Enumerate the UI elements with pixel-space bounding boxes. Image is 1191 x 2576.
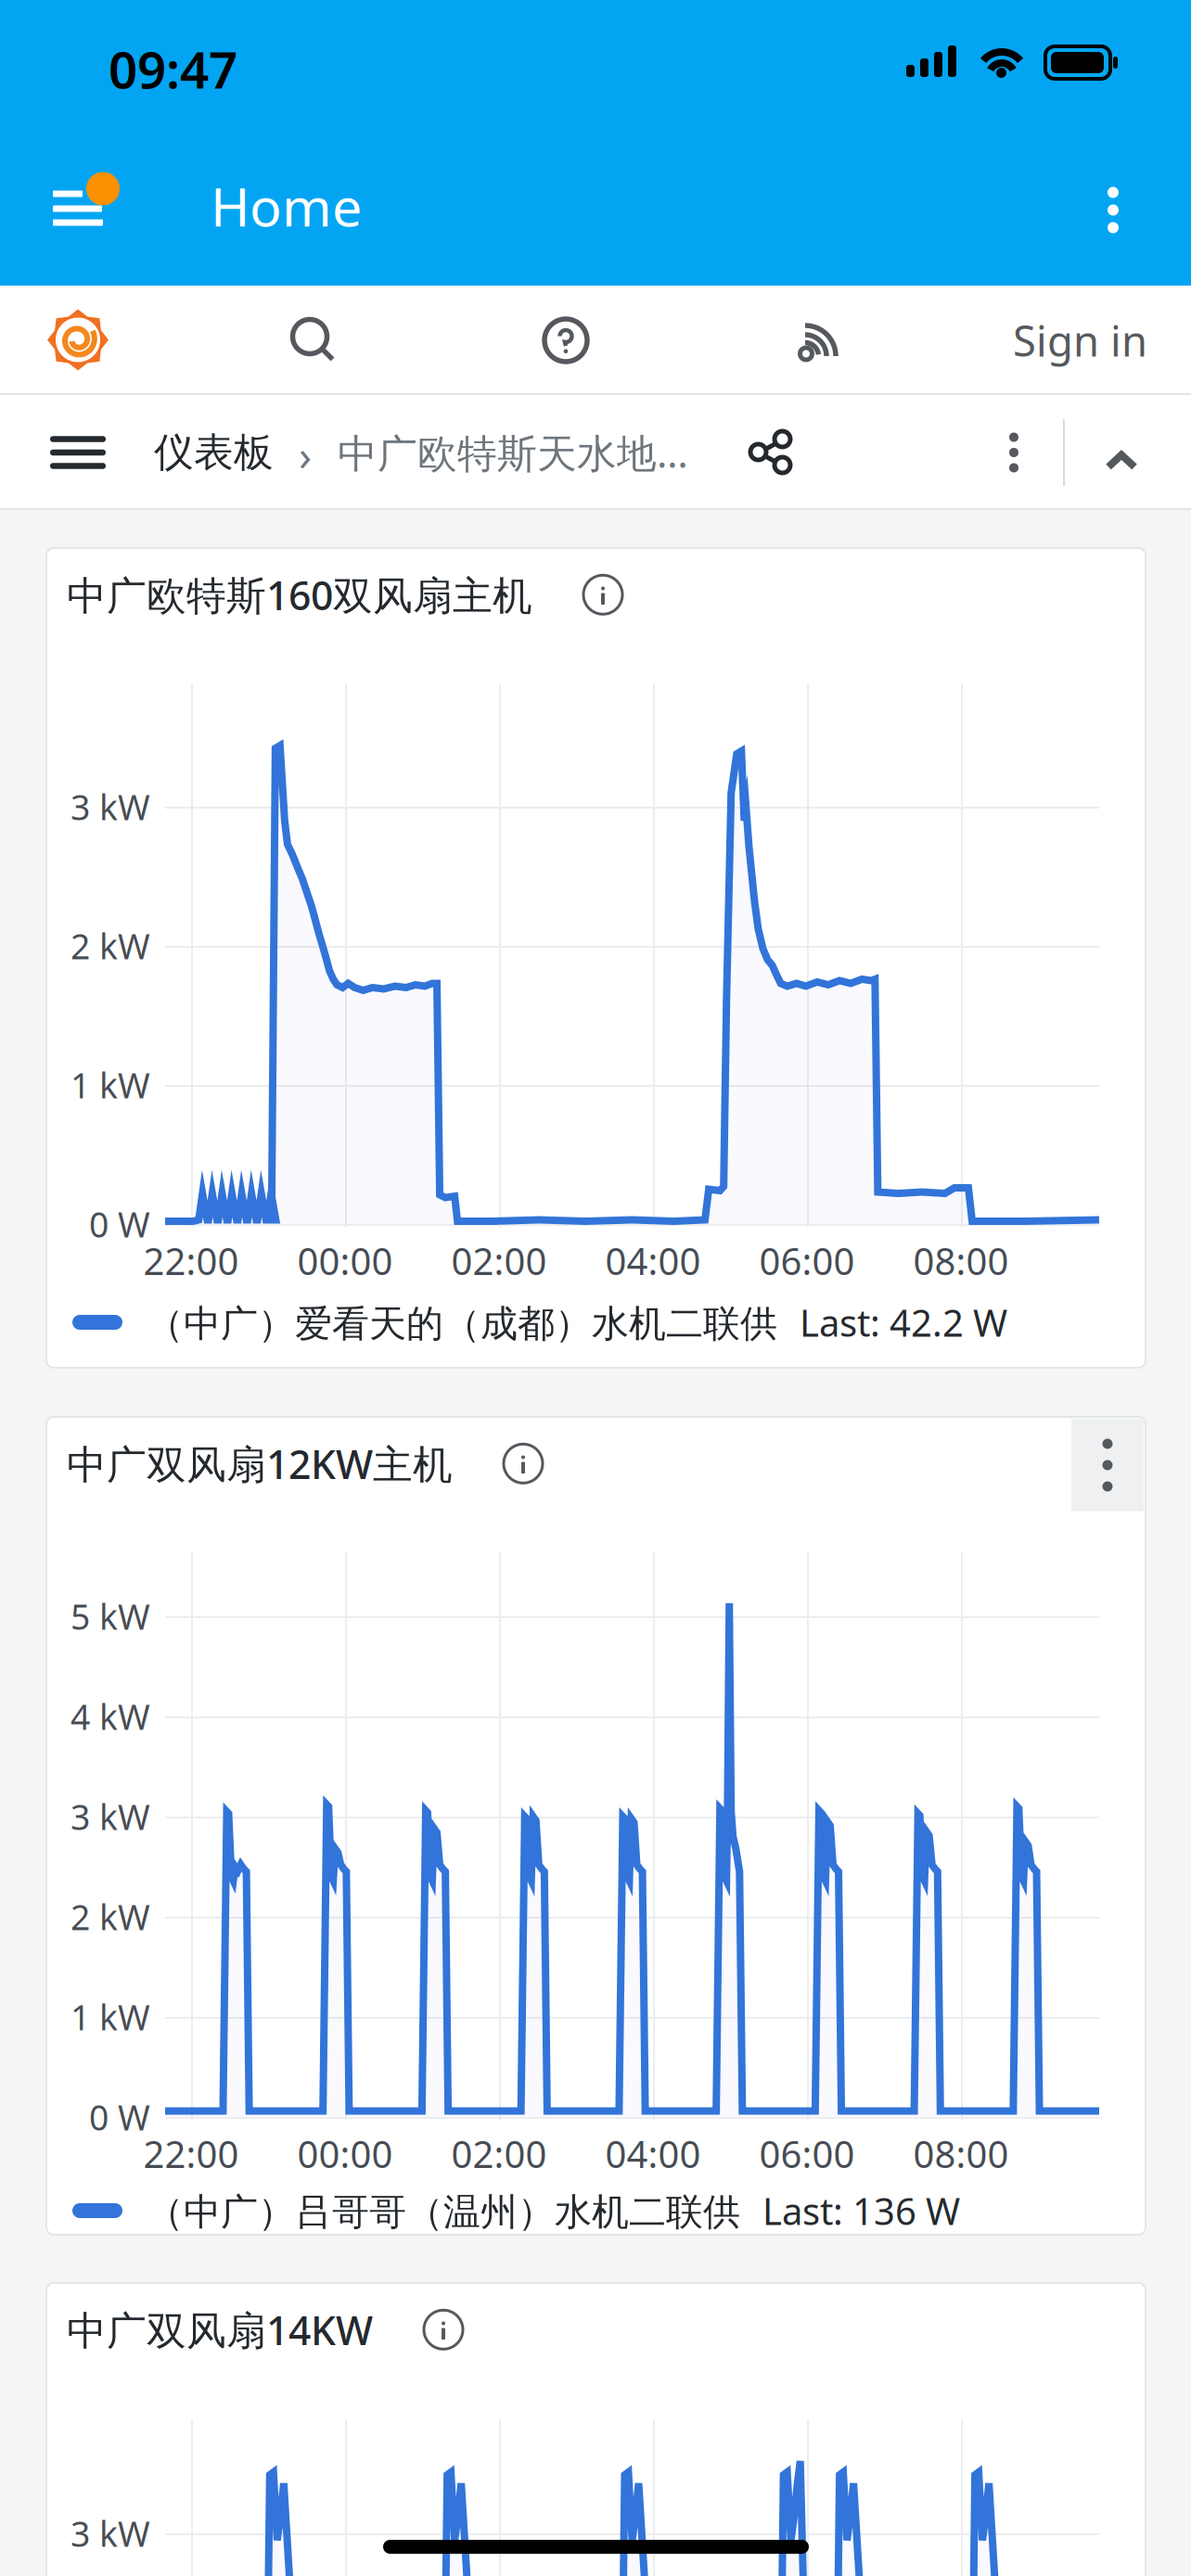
staticText: 0 W	[89, 2094, 150, 2140]
staticText: 22:00	[143, 2129, 239, 2178]
button[interactable]: Panel menu	[1071, 1419, 1144, 1511]
staticText: 0 W	[89, 1201, 150, 1247]
button[interactable]: Collapse	[1080, 403, 1163, 518]
staticText: 08:00	[913, 2129, 1009, 2178]
staticText: 00:00	[297, 2129, 393, 2178]
staticText: 1 kW	[70, 1062, 150, 1108]
staticText: 02:00	[451, 1236, 547, 1285]
staticText: Sign in	[1013, 312, 1147, 368]
button[interactable]: Menu	[31, 123, 142, 274]
staticText: 09:47	[109, 35, 237, 103]
staticText: 5 kW	[70, 1593, 150, 1639]
staticText: 1 kW	[70, 1994, 150, 2040]
staticText: 06:00	[759, 1236, 855, 1285]
button[interactable]: Share	[724, 395, 816, 510]
staticText: 中广欧特斯天水地…	[338, 426, 688, 479]
button[interactable]: Help	[519, 286, 612, 395]
staticText: 2 kW	[70, 923, 150, 969]
staticText: （中广）吕哥哥（温州）水机二联供 Last: 136 W	[147, 2186, 960, 2235]
button[interactable]: Search	[267, 286, 360, 395]
button[interactable]: Toggle menu	[32, 395, 124, 510]
button[interactable]: News	[775, 286, 868, 395]
staticText: 4 kW	[70, 1693, 150, 1739]
button[interactable]: 仪表板	[154, 395, 284, 510]
staticText: 04:00	[605, 1236, 701, 1285]
staticText: 2 kW	[70, 1894, 150, 1940]
button[interactable]: More options	[1062, 134, 1164, 286]
staticText: 02:00	[451, 2129, 547, 2178]
staticText: 06:00	[759, 2129, 855, 2178]
staticText: 3 kW	[70, 2510, 150, 2556]
staticText: 3 kW	[70, 784, 150, 830]
staticText: 仪表板	[154, 428, 274, 477]
staticText: 04:00	[605, 2129, 701, 2178]
button[interactable]: Sign in	[943, 286, 1147, 395]
staticText: Home	[211, 171, 362, 241]
staticText: 22:00	[143, 1236, 239, 1285]
staticText: 中广欧特斯160双风扇主机	[67, 568, 532, 621]
button[interactable]: Dashboard settings	[972, 395, 1056, 510]
staticText: 中广双风扇14KW	[67, 2303, 373, 2356]
staticText: 08:00	[913, 1236, 1009, 1285]
button[interactable]: Grafana home	[32, 286, 124, 395]
staticText: 3 kW	[70, 1794, 150, 1840]
staticText: ›	[299, 427, 312, 482]
staticText: 00:00	[297, 1236, 393, 1285]
staticText: （中广）爱看天的（成都）水机二联供 Last: 42.2 W	[147, 1298, 1007, 1347]
staticText: 中广双风扇12KW主机	[67, 1437, 453, 1490]
